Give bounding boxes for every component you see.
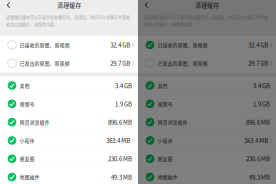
staticText: 地图插件 <box>158 174 178 180</box>
button[interactable]: 小程序 <box>0 131 138 150</box>
button[interactable]: 其他 <box>0 76 138 95</box>
staticText: 29.7 GB <box>110 59 130 68</box>
button[interactable]: 视频号 <box>138 95 276 113</box>
staticText: 363.4 MB <box>244 136 268 145</box>
button[interactable]: 地图插件 <box>138 168 276 184</box>
staticText: 49.3 MB <box>249 173 270 181</box>
button[interactable]: 已接收的原图、原视频 <box>0 36 138 54</box>
button[interactable]: Back <box>0 0 15 12</box>
staticText: 363.4 MB <box>106 136 130 145</box>
button[interactable]: 已接收的原图、原视频 <box>138 36 276 54</box>
staticText: 3.4 GB <box>253 81 270 90</box>
button[interactable]: Back <box>138 0 153 12</box>
staticText: 1.9 GB <box>253 99 270 108</box>
staticText: 230.6 MB <box>108 154 132 163</box>
button[interactable]: 已发出的原图、原视频 <box>0 54 138 72</box>
button[interactable]: 视频号 <box>0 95 138 113</box>
staticText: 230.6 MB <box>246 154 270 163</box>
button[interactable]: 其他 <box>138 76 276 95</box>
staticText: 小程序 <box>158 137 173 144</box>
button[interactable]: 地图插件 <box>0 168 138 184</box>
staticText: 896.6 MB <box>108 118 132 126</box>
staticText: 32.4 GB <box>110 41 130 49</box>
staticText: 清理缓存 <box>57 1 81 9</box>
staticText: 29.7 GB <box>248 59 268 68</box>
button[interactable]: 朋友圈 <box>0 150 138 168</box>
staticText: 3.4 GB <box>115 81 132 90</box>
staticText: 清理微信缓存可以节省手机存储空间，清理后，你仍可以在聊天中查看 <box>144 15 268 21</box>
staticText: 已发出的原图、原视频 <box>158 60 208 67</box>
button[interactable]: 网页浏览插件 <box>0 113 138 131</box>
staticText: 清理缓存 <box>195 1 219 9</box>
staticText: 朋友圈 <box>158 155 173 162</box>
staticText: 收到过的图片、视频等内容。 <box>144 22 196 28</box>
staticText: 其他 <box>158 82 168 89</box>
staticText: 已接收的原图、原视频 <box>20 42 70 48</box>
staticText: 收到过的图片、视频等内容。 <box>6 22 58 28</box>
staticText: 视频号 <box>20 100 35 107</box>
staticText: 小程序 <box>20 137 35 144</box>
button[interactable]: 已发出的原图、原视频 <box>138 54 276 72</box>
staticText: 清理微信缓存可以节省手机存储空间，清理后，你仍可以在聊天中查看 <box>6 15 130 21</box>
button[interactable]: 小程序 <box>138 131 276 150</box>
staticText: 已接收的原图、原视频 <box>158 42 208 48</box>
staticText: 已发出的原图、原视频 <box>20 60 70 67</box>
staticText: 其他 <box>20 82 30 89</box>
staticText: 朋友圈 <box>20 155 35 162</box>
staticText: 896.6 MB <box>246 118 270 126</box>
staticText: 地图插件 <box>20 174 40 180</box>
button[interactable]: 网页浏览插件 <box>138 113 276 131</box>
staticText: 49.3 MB <box>111 173 132 181</box>
staticText: 网页浏览插件 <box>20 119 50 126</box>
staticText: 网页浏览插件 <box>158 119 188 126</box>
button[interactable]: 朋友圈 <box>138 150 276 168</box>
staticText: 1.9 GB <box>115 99 132 108</box>
staticText: 视频号 <box>158 100 173 107</box>
staticText: 32.4 GB <box>248 41 268 49</box>
